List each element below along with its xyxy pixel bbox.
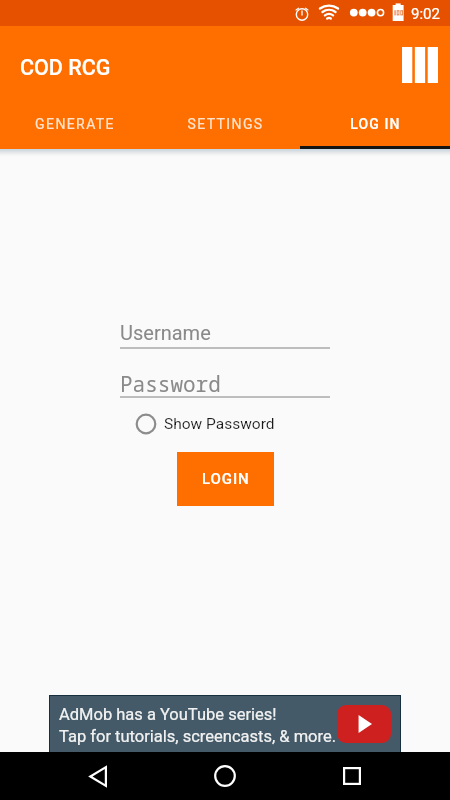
staticText: SETTINGS — [187, 116, 264, 132]
button[interactable]: LOGIN — [177, 452, 274, 506]
staticText: AdMob has a YouTube series! — [59, 705, 277, 724]
staticText: Password — [120, 370, 221, 399]
staticText: GENERATE — [35, 116, 115, 132]
button[interactable]: Play video — [337, 705, 391, 743]
button[interactable]: Menu — [390, 41, 450, 88]
button[interactable]: Back — [68, 752, 128, 800]
staticText: Tap for tutorials, screencasts, & more. — [59, 727, 337, 746]
staticText: 9:02 — [411, 5, 440, 23]
button[interactable]: Recents — [322, 752, 382, 800]
button[interactable]: AdMob has a YouTube series! — [50, 696, 400, 753]
button[interactable]: GENERATE — [0, 96, 150, 149]
staticText: Show Password — [164, 415, 275, 433]
staticText: COD RCG — [20, 55, 111, 80]
staticText: LOGIN — [202, 470, 250, 488]
button[interactable]: Home — [195, 752, 255, 800]
button[interactable]: SETTINGS — [150, 96, 300, 149]
button[interactable]: LOG IN — [300, 96, 450, 149]
button[interactable]: Show Password — [135, 411, 275, 437]
staticText: Username — [120, 321, 211, 344]
staticText: LOG IN — [350, 116, 401, 132]
